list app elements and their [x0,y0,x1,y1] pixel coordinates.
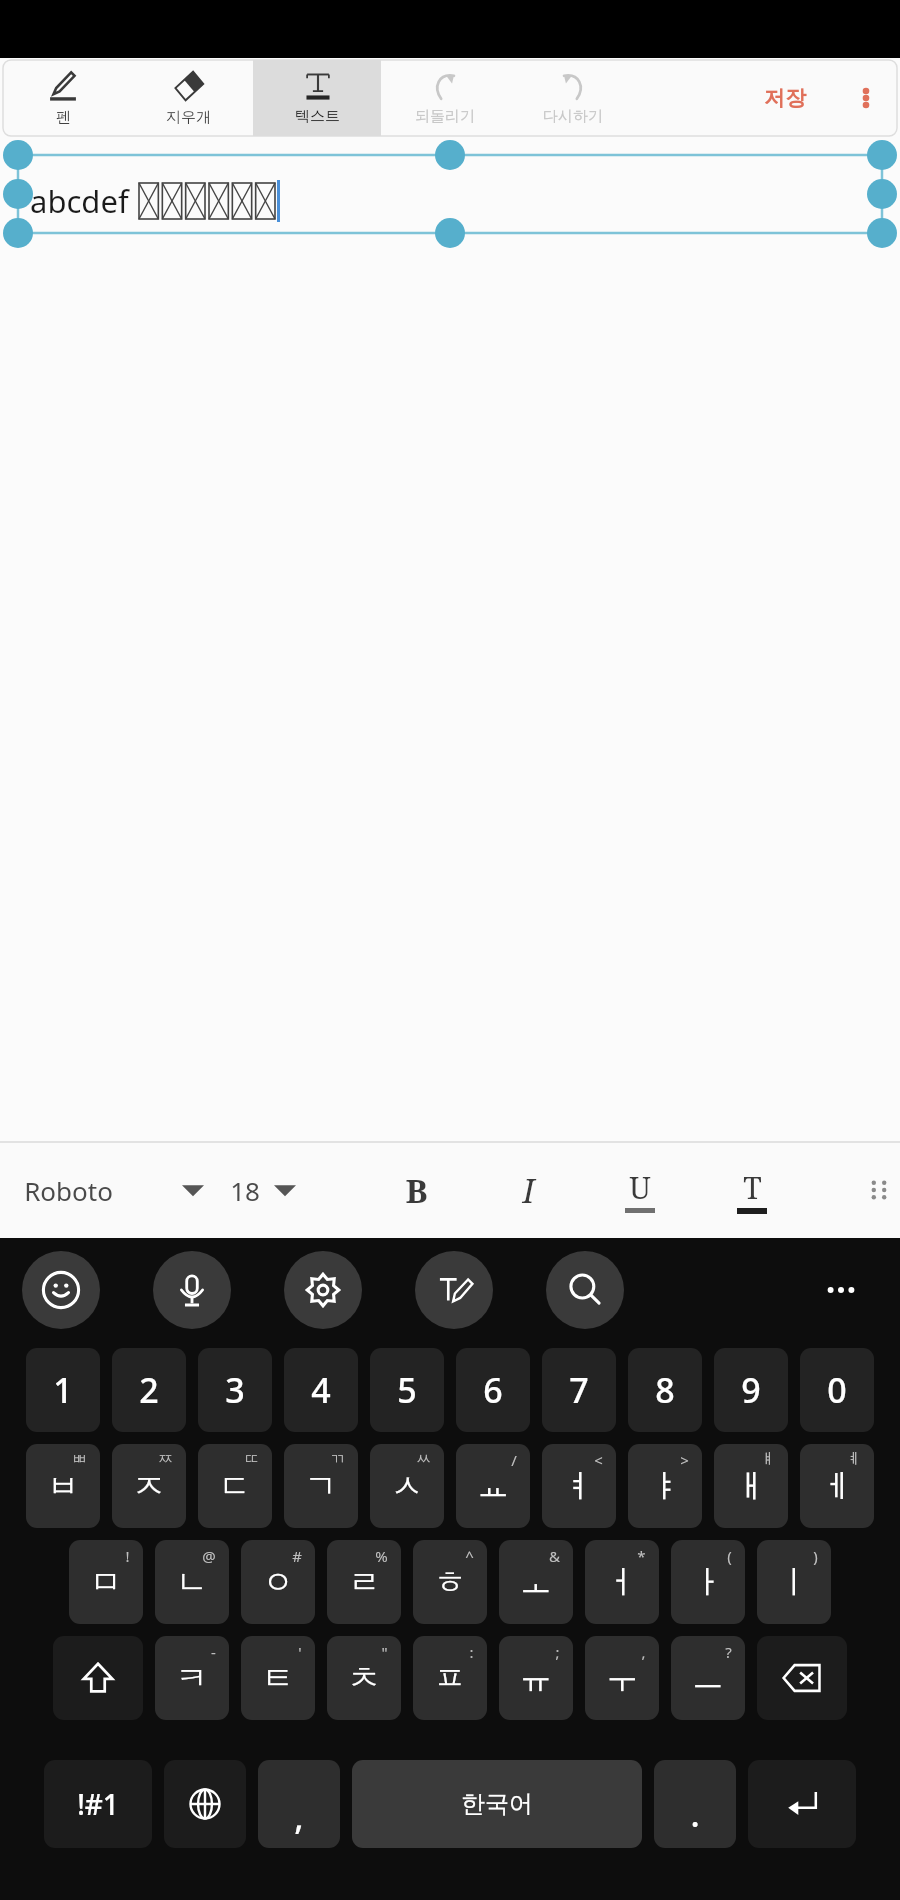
staticText: ㅖ [846,1450,861,1469]
button[interactable]: 1 [26,1348,100,1432]
staticText: 6 [483,1367,503,1413]
button[interactable]: 5 [370,1348,444,1432]
staticText: 1 [53,1367,73,1413]
button[interactable]: " [327,1636,401,1720]
button[interactable]: T [696,1142,808,1238]
button[interactable]: & [499,1540,573,1624]
staticText: ㅊ [348,1658,380,1698]
button[interactable]: More keyboard options [802,1251,880,1329]
staticText: ㅍ [434,1658,466,1698]
button[interactable]: Drag handle [866,1142,900,1238]
button[interactable]: Search [546,1251,624,1329]
staticText: 7 [569,1367,589,1413]
button[interactable]: Handwriting [415,1251,493,1329]
button[interactable]: 0 [800,1348,874,1432]
button[interactable]: Backspace [757,1636,847,1720]
button[interactable]: / [456,1444,530,1528]
staticText: ㅅ [391,1466,423,1506]
button[interactable]: Voice input [153,1251,231,1329]
staticText: ㅡ [692,1658,724,1698]
button[interactable]: Emoji [22,1251,100,1329]
button[interactable]: 18 [230,1142,360,1238]
staticText: - [211,1642,216,1662]
button[interactable]: ㅉ [112,1444,186,1528]
button[interactable]: ㄸ [198,1444,272,1528]
button[interactable]: ^ [413,1540,487,1624]
button[interactable]: 펜 [3,60,123,136]
button[interactable]: 지우개 [123,60,253,136]
button[interactable]: # [241,1540,315,1624]
button[interactable]: More options [835,60,897,136]
staticText: ㅈ [133,1466,165,1506]
button[interactable]: ! [69,1540,143,1624]
staticText: . [690,1791,700,1837]
button[interactable]: 텍스트 [253,60,381,136]
staticText: , [294,1794,304,1840]
staticText: ㅛ [477,1466,509,1506]
button[interactable]: ㅃ [26,1444,100,1528]
staticText: ㄴ [176,1562,208,1602]
staticText: ; [555,1642,560,1662]
button[interactable]: U [584,1142,696,1238]
button[interactable]: , [585,1636,659,1720]
staticText: ㅆ [416,1450,431,1469]
button[interactable]: 7 [542,1348,616,1432]
button[interactable]: Change language [164,1760,246,1848]
staticText: ㅗ [520,1562,552,1602]
staticText: !#1 [77,1785,119,1823]
staticText: / [511,1450,517,1470]
button[interactable]: Settings [284,1251,362,1329]
button[interactable]: B [360,1142,472,1238]
staticText: ( [727,1546,732,1566]
staticText: * [637,1546,646,1566]
button[interactable]: - [155,1636,229,1720]
staticText: ㅜ [606,1658,638,1698]
staticText: ㄷ [219,1466,251,1506]
button[interactable]: : [413,1636,487,1720]
staticText: " [381,1642,388,1662]
staticText: ㅁ [90,1562,122,1602]
button[interactable]: 9 [714,1348,788,1432]
button[interactable]: > [628,1444,702,1528]
button[interactable]: Enter [748,1760,856,1848]
button[interactable]: 2 [112,1348,186,1432]
button[interactable]: 6 [456,1348,530,1432]
button[interactable]: 되돌리기 [381,60,509,136]
staticText: ㅃ [72,1450,87,1469]
button[interactable]: I [472,1142,584,1238]
button[interactable]: 한국어 [352,1760,642,1848]
button[interactable]: Shift [53,1636,143,1720]
button[interactable]: ㅆ [370,1444,444,1528]
button[interactable]: ) [757,1540,831,1624]
button[interactable]: ( [671,1540,745,1624]
staticText: 저장 [764,85,806,111]
button[interactable]: ; [499,1636,573,1720]
button[interactable]: ㅒ [714,1444,788,1528]
button[interactable]: < [542,1444,616,1528]
button[interactable]: 3 [198,1348,272,1432]
staticText: ㅐ [735,1466,767,1506]
button[interactable]: ' [241,1636,315,1720]
button[interactable]: 4 [284,1348,358,1432]
button[interactable]: % [327,1540,401,1624]
button[interactable]: ㅖ [800,1444,874,1528]
staticText: ㅒ [760,1450,775,1469]
staticText: ㅑ [649,1466,681,1506]
button[interactable]: ? [671,1636,745,1720]
staticText: I [522,1168,535,1213]
staticText: ㅔ [821,1466,853,1506]
button[interactable]: 저장 [735,60,835,136]
staticText: 3 [225,1367,245,1413]
button[interactable]: @ [155,1540,229,1624]
button[interactable]: * [585,1540,659,1624]
button[interactable]: ㄲ [284,1444,358,1528]
staticText: ㅌ [262,1658,294,1698]
staticText: ! [125,1546,130,1566]
button[interactable]: Roboto [0,1142,230,1238]
button[interactable]: , [258,1760,340,1848]
button[interactable]: 8 [628,1348,702,1432]
button[interactable]: . [654,1760,736,1848]
button[interactable]: Symbols [44,1760,152,1848]
staticText: ^ [465,1546,474,1566]
button[interactable]: 다시하기 [509,60,637,136]
